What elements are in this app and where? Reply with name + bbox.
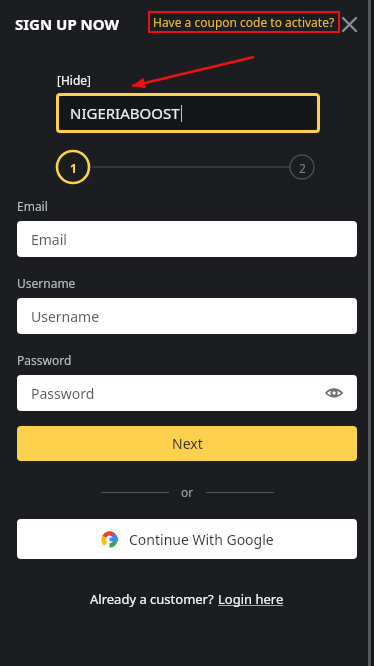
staticText: Have a coupon code to activate? [153,14,335,30]
staticText: Next [172,434,203,453]
staticText: or [181,484,194,500]
button[interactable]: [Hide] [57,72,92,88]
staticText: Continue With Google [129,530,274,549]
staticText: Username [31,307,100,326]
button[interactable]: Login here [218,590,284,608]
button[interactable]: Username [17,298,357,334]
staticText: Email [17,198,48,214]
button[interactable]: NIGERIABOOST [59,96,317,130]
button[interactable]: Email [17,221,357,257]
staticText: 1 [70,160,77,176]
staticText: 2 [299,160,306,176]
button[interactable]: Close [335,10,363,38]
staticText: Username [17,275,76,291]
staticText: Password [17,352,72,368]
button[interactable]: Have a coupon code to activate? [148,11,340,33]
staticText: SIGN UP NOW [15,14,120,34]
button[interactable]: Continue With Google [17,519,357,559]
staticText: Password [31,384,95,403]
button[interactable]: Show password [323,382,345,404]
staticText: NIGERIABOOST [70,103,180,123]
button[interactable]: Password [17,375,357,411]
button[interactable]: Next [17,426,357,461]
button[interactable]: Already a customer? [90,590,218,608]
staticText: Email [31,230,67,249]
